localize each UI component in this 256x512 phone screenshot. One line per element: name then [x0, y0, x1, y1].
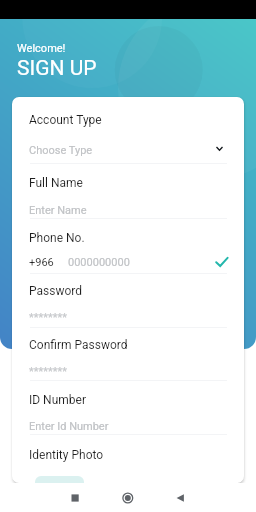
staticText: ********: [29, 365, 67, 378]
button[interactable]: Account Type: [30, 97, 227, 163]
staticText: Welcome!: [17, 42, 66, 55]
button[interactable]: Confirm Password: [30, 328, 227, 381]
other: Phone number verified: [212, 252, 232, 272]
button[interactable]: Phone No.: [30, 219, 227, 273]
staticText: Identity Photo: [29, 448, 104, 462]
staticText: Password: [29, 284, 83, 298]
staticText: ********: [29, 311, 67, 324]
button[interactable]: Password: [30, 274, 227, 327]
staticText: +966: [29, 256, 54, 269]
staticText: Enter Name: [29, 204, 87, 217]
button[interactable]: ID Number: [30, 381, 227, 434]
staticText: ID Number: [29, 393, 86, 407]
button[interactable]: Full Name: [30, 164, 227, 218]
button[interactable]: Upload identity photo: [35, 476, 84, 483]
staticText: Enter Id Number: [29, 420, 109, 433]
staticText: Account Type: [29, 113, 102, 127]
staticText: SIGN UP: [17, 56, 97, 81]
staticText: Confirm Password: [29, 338, 128, 352]
staticText: Choose Type: [29, 144, 93, 157]
staticText: Full Name: [29, 176, 83, 190]
staticText: Phone No.: [29, 231, 85, 245]
staticText: 0000000000: [68, 256, 130, 269]
